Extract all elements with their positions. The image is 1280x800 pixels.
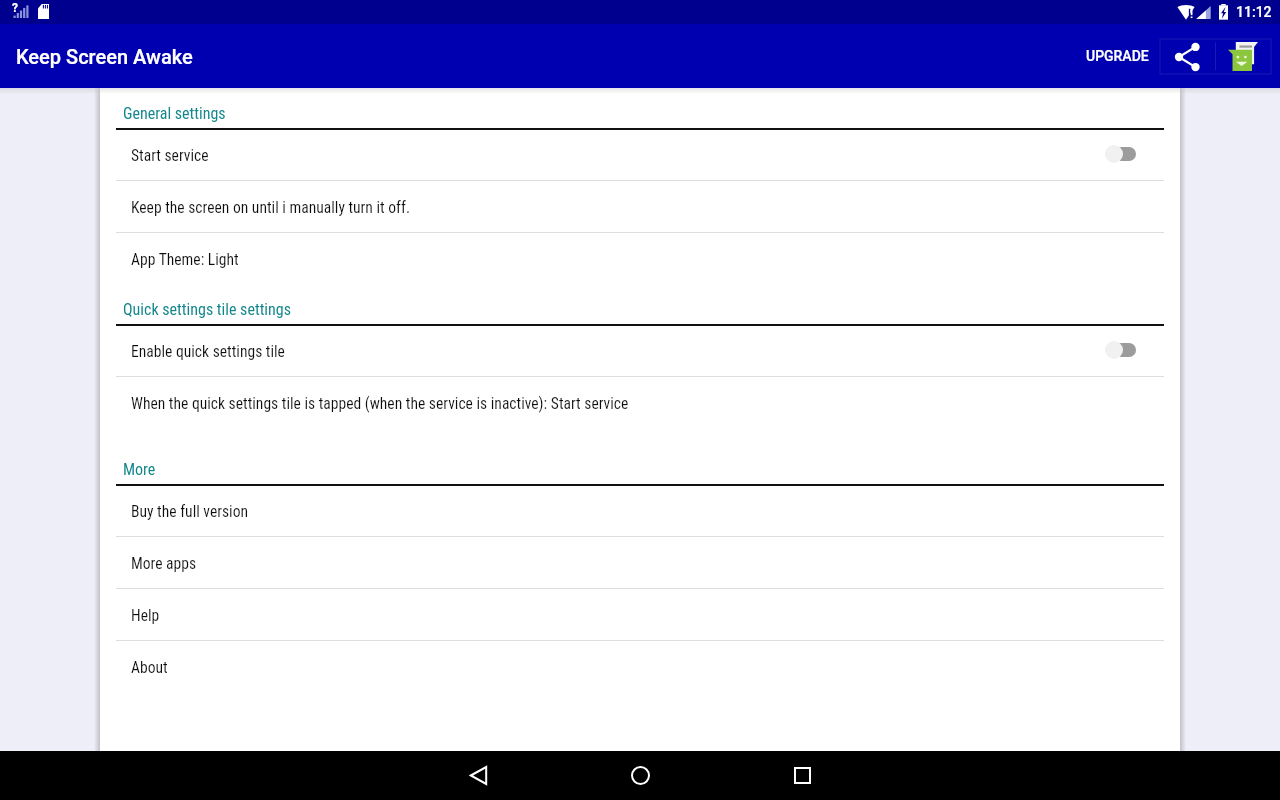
staticText: More [123, 460, 156, 479]
button[interactable]: Help [100, 588, 1180, 640]
button[interactable]: Start service [100, 128, 1180, 180]
staticText: 11:12 [1236, 4, 1272, 20]
staticText: Buy the full version [131, 503, 249, 521]
button[interactable]: App Theme: Light [100, 232, 1180, 284]
button[interactable]: When the quick settings tile is tapped (… [100, 376, 1180, 428]
staticText: Help [131, 607, 160, 625]
staticText: Start service [131, 147, 209, 165]
staticText: General settings [123, 104, 226, 123]
staticText: UPGRADE [1086, 48, 1149, 64]
button[interactable]: Keep the screen on until i manually turn… [100, 180, 1180, 232]
staticText: Quick settings tile settings [123, 300, 291, 319]
button[interactable]: More apps [100, 536, 1180, 588]
staticText: Enable quick settings tile [131, 343, 285, 361]
staticText: Keep the screen on until i manually turn… [131, 199, 411, 217]
staticText: App Theme: Light [131, 251, 239, 269]
button[interactable]: Enable quick settings tile [100, 324, 1180, 376]
button[interactable]: UPGRADE [1072, 32, 1163, 80]
button[interactable]: Share [1160, 39, 1215, 74]
staticText: When the quick settings tile is tapped (… [131, 395, 629, 413]
button[interactable]: Home [559, 751, 721, 800]
staticText: More apps [131, 555, 197, 573]
button[interactable]: Back [397, 751, 559, 800]
button[interactable]: Send message [1215, 39, 1271, 74]
button[interactable]: About [100, 640, 1180, 692]
staticText: ? [12, 1, 18, 15]
button[interactable]: Buy the full version [100, 484, 1180, 536]
staticText: About [131, 659, 168, 677]
staticText: Keep Screen Awake [16, 45, 193, 68]
button[interactable]: Recent apps [721, 751, 883, 800]
